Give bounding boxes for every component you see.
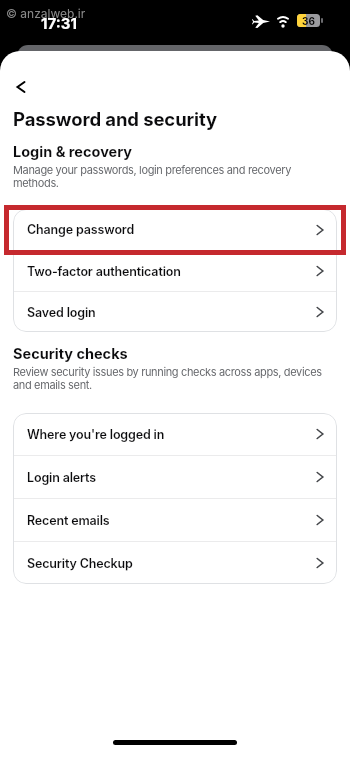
button[interactable]: Two-factor authentication: [13, 251, 337, 291]
staticText: Recent emails: [27, 513, 110, 528]
staticText: © anzalweb.ir: [6, 6, 86, 21]
button[interactable]: Saved login: [13, 292, 337, 332]
staticText: Login alerts: [27, 470, 96, 485]
staticText: Where you're logged in: [27, 427, 165, 442]
staticText: Change password: [27, 222, 135, 237]
button[interactable]: Login alerts: [13, 456, 337, 498]
staticText: Two-factor authentication: [27, 264, 181, 279]
staticText: Security checks: [13, 345, 128, 363]
button[interactable]: Change password: [13, 209, 337, 250]
button[interactable]: [4, 72, 38, 102]
staticText: 36: [302, 15, 315, 27]
staticText: Review security issues by running checks…: [13, 365, 322, 391]
staticText: Password and security: [13, 108, 218, 130]
button[interactable]: Where you're logged in: [13, 413, 337, 455]
staticText: 17:31: [41, 14, 77, 32]
staticText: Login & recovery: [13, 143, 133, 161]
button[interactable]: Security Checkup: [13, 542, 337, 584]
staticText: Saved login: [27, 305, 96, 320]
button[interactable]: Recent emails: [13, 499, 337, 541]
staticText: Security Checkup: [27, 556, 133, 571]
staticText: Manage your passwords, login preferences…: [13, 163, 292, 189]
